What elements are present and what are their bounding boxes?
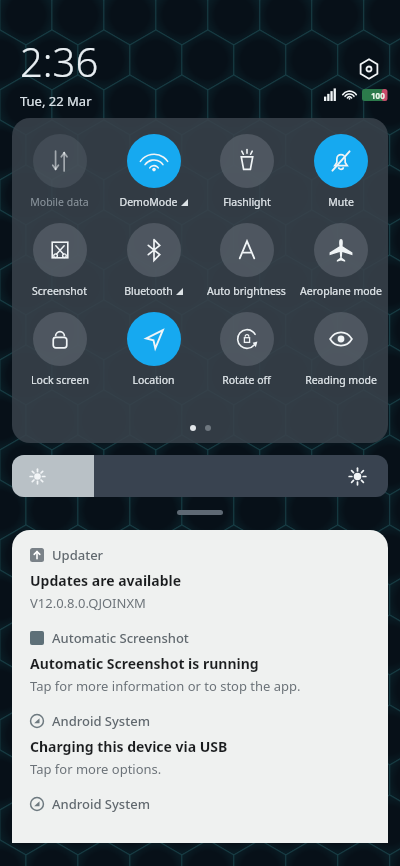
button[interactable]: Rotate off (201, 312, 292, 387)
staticText: Mobile data (30, 195, 89, 209)
button[interactable]: Lock screen (14, 312, 105, 387)
button[interactable]: Android System (12, 712, 388, 778)
staticText: Tap for more information or to stop the … (30, 677, 301, 695)
staticText: Charging this device via USB (30, 737, 228, 756)
staticText: Reading mode (305, 373, 377, 387)
staticText: Location (132, 373, 175, 387)
staticText: Aeroplane mode (300, 284, 382, 298)
button[interactable]: Aeroplane mode (295, 223, 386, 298)
staticText: Automatic Screenshot (52, 629, 189, 647)
button[interactable]: Location (108, 312, 199, 387)
button[interactable]: Mute (295, 134, 386, 209)
button[interactable]: Settings (352, 52, 386, 86)
staticText: DemoMode (119, 195, 178, 209)
staticText: Updates are available (30, 571, 182, 590)
button[interactable]: Brightness (12, 455, 388, 497)
staticText: V12.0.8.0.QJOINXM (30, 594, 146, 612)
button[interactable]: DemoMode (108, 134, 199, 209)
staticText: Rotate off (222, 373, 271, 387)
staticText: Tue, 22 Mar (20, 92, 92, 110)
button[interactable]: Reading mode (295, 312, 386, 387)
staticText: Screenshot (32, 284, 87, 298)
button[interactable]: Bluetooth (108, 223, 199, 298)
staticText: Updater (52, 546, 104, 564)
staticText: Tap for more options. (30, 760, 162, 778)
button[interactable]: Mobile data (14, 134, 105, 209)
button[interactable]: Automatic Screenshot (12, 629, 388, 695)
staticText: Android System (52, 795, 150, 813)
button[interactable]: Android System (12, 795, 388, 813)
button[interactable]: Screenshot (14, 223, 105, 298)
staticText: Lock screen (31, 373, 89, 387)
staticText: 100 (371, 90, 385, 101)
staticText: Bluetooth (124, 284, 173, 298)
button[interactable]: Auto brightness (201, 223, 292, 298)
button[interactable]: Updater (12, 546, 388, 612)
staticText: Mute (328, 195, 354, 209)
staticText: Android System (52, 712, 150, 730)
staticText: Flashlight (223, 195, 271, 209)
staticText: Automatic Screenshot is running (30, 654, 259, 673)
button[interactable]: Flashlight (201, 134, 292, 209)
staticText: Auto brightness (207, 284, 286, 298)
staticText: 2:36 (20, 34, 99, 88)
